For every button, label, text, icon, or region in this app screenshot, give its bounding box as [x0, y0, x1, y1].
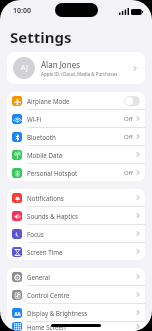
staticText: Sounds & Haptics: [27, 212, 136, 220]
staticText: 10:00: [13, 6, 31, 16]
staticText: AA: [14, 311, 21, 317]
staticText: Airplane Mode: [27, 97, 124, 105]
staticText: Home Screen: [27, 323, 136, 331]
staticText: Bluetooth: [27, 133, 124, 141]
button[interactable]: Sounds & Haptics: [7, 207, 145, 224]
staticText: Alan Jones: [41, 59, 80, 70]
staticText: Screen Time: [27, 248, 136, 256]
staticText: Off: [124, 115, 133, 123]
staticText: Wi-Fi: [27, 115, 124, 123]
staticText: AJ: [21, 63, 28, 73]
button[interactable]: Notifications: [7, 189, 145, 206]
staticText: Personal Hotspot: [27, 169, 124, 177]
button[interactable]: Bluetooth: [7, 128, 145, 145]
button[interactable]: AA: [7, 304, 145, 321]
button[interactable]: Screen Time: [7, 243, 145, 260]
staticText: Display & Brightness: [27, 309, 136, 317]
button[interactable]: AJ: [7, 52, 145, 84]
button[interactable]: Home Screen: [7, 322, 145, 331]
button[interactable]: Mobile Data: [7, 146, 145, 163]
button[interactable]: Control Centre: [7, 286, 145, 303]
staticText: Apple ID, iCloud, Media & Purchases: [41, 71, 118, 77]
staticText: Notifications: [27, 194, 136, 202]
staticText: Control Centre: [27, 291, 136, 299]
button[interactable]: General: [7, 268, 145, 285]
staticText: Focus: [27, 230, 136, 238]
staticText: General: [27, 273, 136, 281]
button[interactable]: Airplane Mode: [7, 92, 145, 109]
staticText: Mobile Data: [27, 151, 136, 159]
staticText: Off: [124, 133, 133, 141]
staticText: Off: [124, 169, 133, 177]
button[interactable]: Wi-Fi: [7, 110, 145, 127]
button[interactable]: Airplane Mode toggle, off: [124, 96, 140, 106]
staticText: Settings: [10, 27, 72, 47]
button[interactable]: Personal Hotspot: [7, 164, 145, 181]
button[interactable]: Focus: [7, 225, 145, 242]
